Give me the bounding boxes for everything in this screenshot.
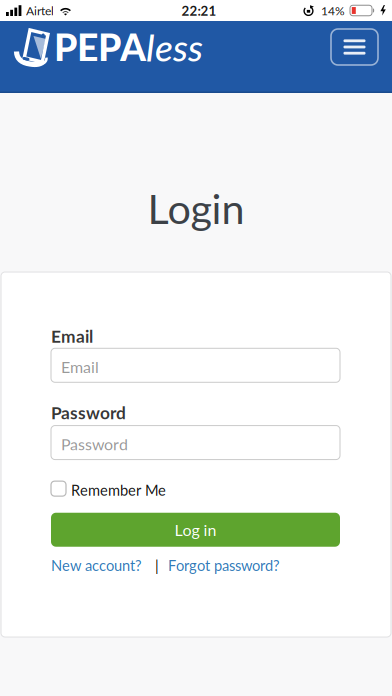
staticText: Email xyxy=(51,326,93,346)
staticText: | xyxy=(155,557,159,574)
staticText: 22:21 xyxy=(181,3,216,18)
button[interactable]: New account? xyxy=(51,557,142,574)
button[interactable]: Forgot password? xyxy=(168,557,280,574)
button[interactable]: Password xyxy=(51,426,340,460)
staticText: Email xyxy=(61,357,99,376)
staticText: Airtel xyxy=(26,3,54,17)
staticText: Forgot password? xyxy=(168,557,280,574)
staticText: Remember Me xyxy=(71,482,166,499)
staticText: PEPAless xyxy=(54,25,203,69)
staticText: New account? xyxy=(51,557,142,574)
button[interactable]: Email xyxy=(51,348,340,382)
staticText: Log in xyxy=(174,520,216,539)
button[interactable]: Remember Me xyxy=(51,479,166,499)
staticText: Password xyxy=(61,435,128,453)
staticText: Login xyxy=(147,184,244,232)
staticText: 14% xyxy=(321,3,345,17)
staticText: Password xyxy=(51,402,126,423)
button[interactable]: Log in xyxy=(51,513,340,547)
button[interactable]: Menu xyxy=(331,29,378,65)
